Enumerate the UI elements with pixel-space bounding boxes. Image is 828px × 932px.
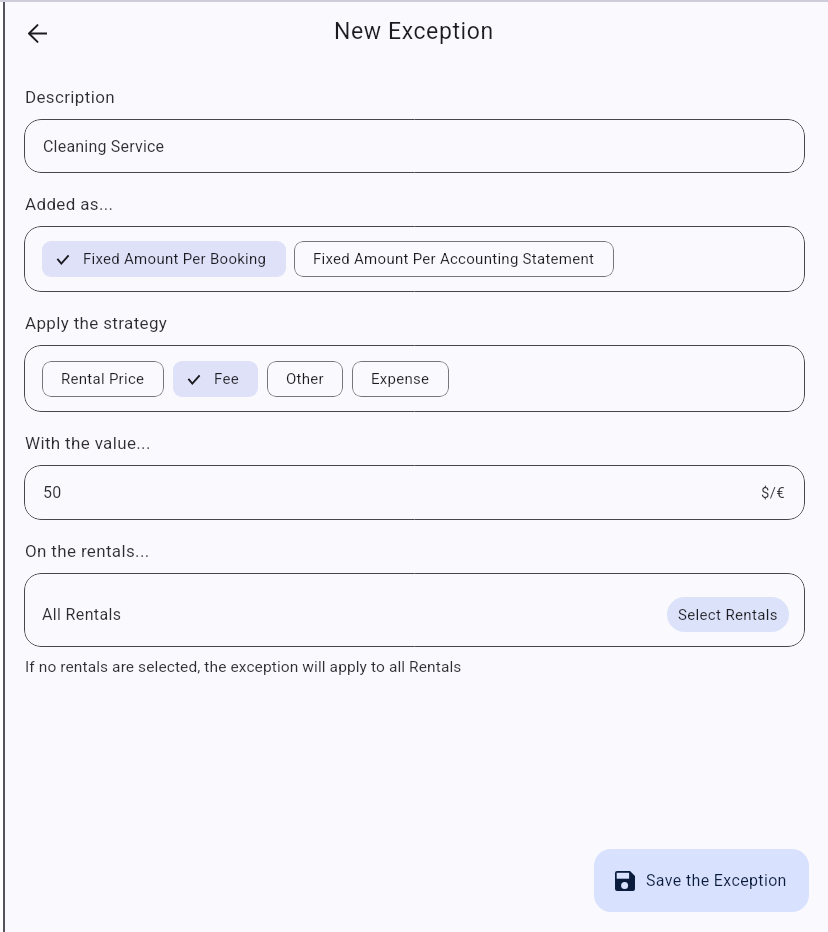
button[interactable]: Back xyxy=(13,9,61,57)
staticText: Fixed Amount Per Accounting Statement xyxy=(313,250,595,268)
button[interactable]: Fixed Amount Per Accounting Statement xyxy=(294,241,614,277)
button[interactable]: Rental Price xyxy=(42,361,164,397)
staticText: Added as... xyxy=(25,194,114,214)
staticText: Expense xyxy=(371,370,430,388)
staticText: If no rentals are selected, the exceptio… xyxy=(25,658,462,676)
button[interactable]: Fixed Amount Per Booking xyxy=(24,226,805,292)
staticText: Other xyxy=(286,370,324,388)
staticText: Rental Price xyxy=(61,370,145,388)
staticText: 50 xyxy=(43,483,62,502)
staticText: Save the Exception xyxy=(646,871,787,890)
button[interactable]: Select Rentals xyxy=(667,597,789,632)
button[interactable]: Other xyxy=(267,361,343,397)
staticText: Description xyxy=(25,87,115,107)
staticText: Fixed Amount Per Booking xyxy=(83,250,267,268)
staticText: All Rentals xyxy=(42,605,122,624)
button[interactable]: 50 xyxy=(24,465,805,520)
button[interactable]: All Rentals xyxy=(24,573,805,647)
button[interactable]: Expense xyxy=(352,361,449,397)
staticText: With the value... xyxy=(25,433,151,453)
staticText: Apply the strategy xyxy=(25,313,168,333)
staticText: $/€ xyxy=(761,484,786,502)
staticText: Cleaning Service xyxy=(43,137,165,156)
button[interactable]: Fixed Amount Per Booking xyxy=(42,241,286,277)
staticText: Select Rentals xyxy=(678,606,778,624)
button[interactable]: Rental Price xyxy=(24,345,805,412)
button[interactable]: Fee xyxy=(173,361,258,397)
staticText: Fee xyxy=(214,370,239,388)
staticText: New Exception xyxy=(334,18,494,45)
button[interactable]: Save the Exception xyxy=(594,849,809,912)
button[interactable]: Cleaning Service xyxy=(24,119,805,173)
staticText: On the rentals... xyxy=(25,541,150,561)
